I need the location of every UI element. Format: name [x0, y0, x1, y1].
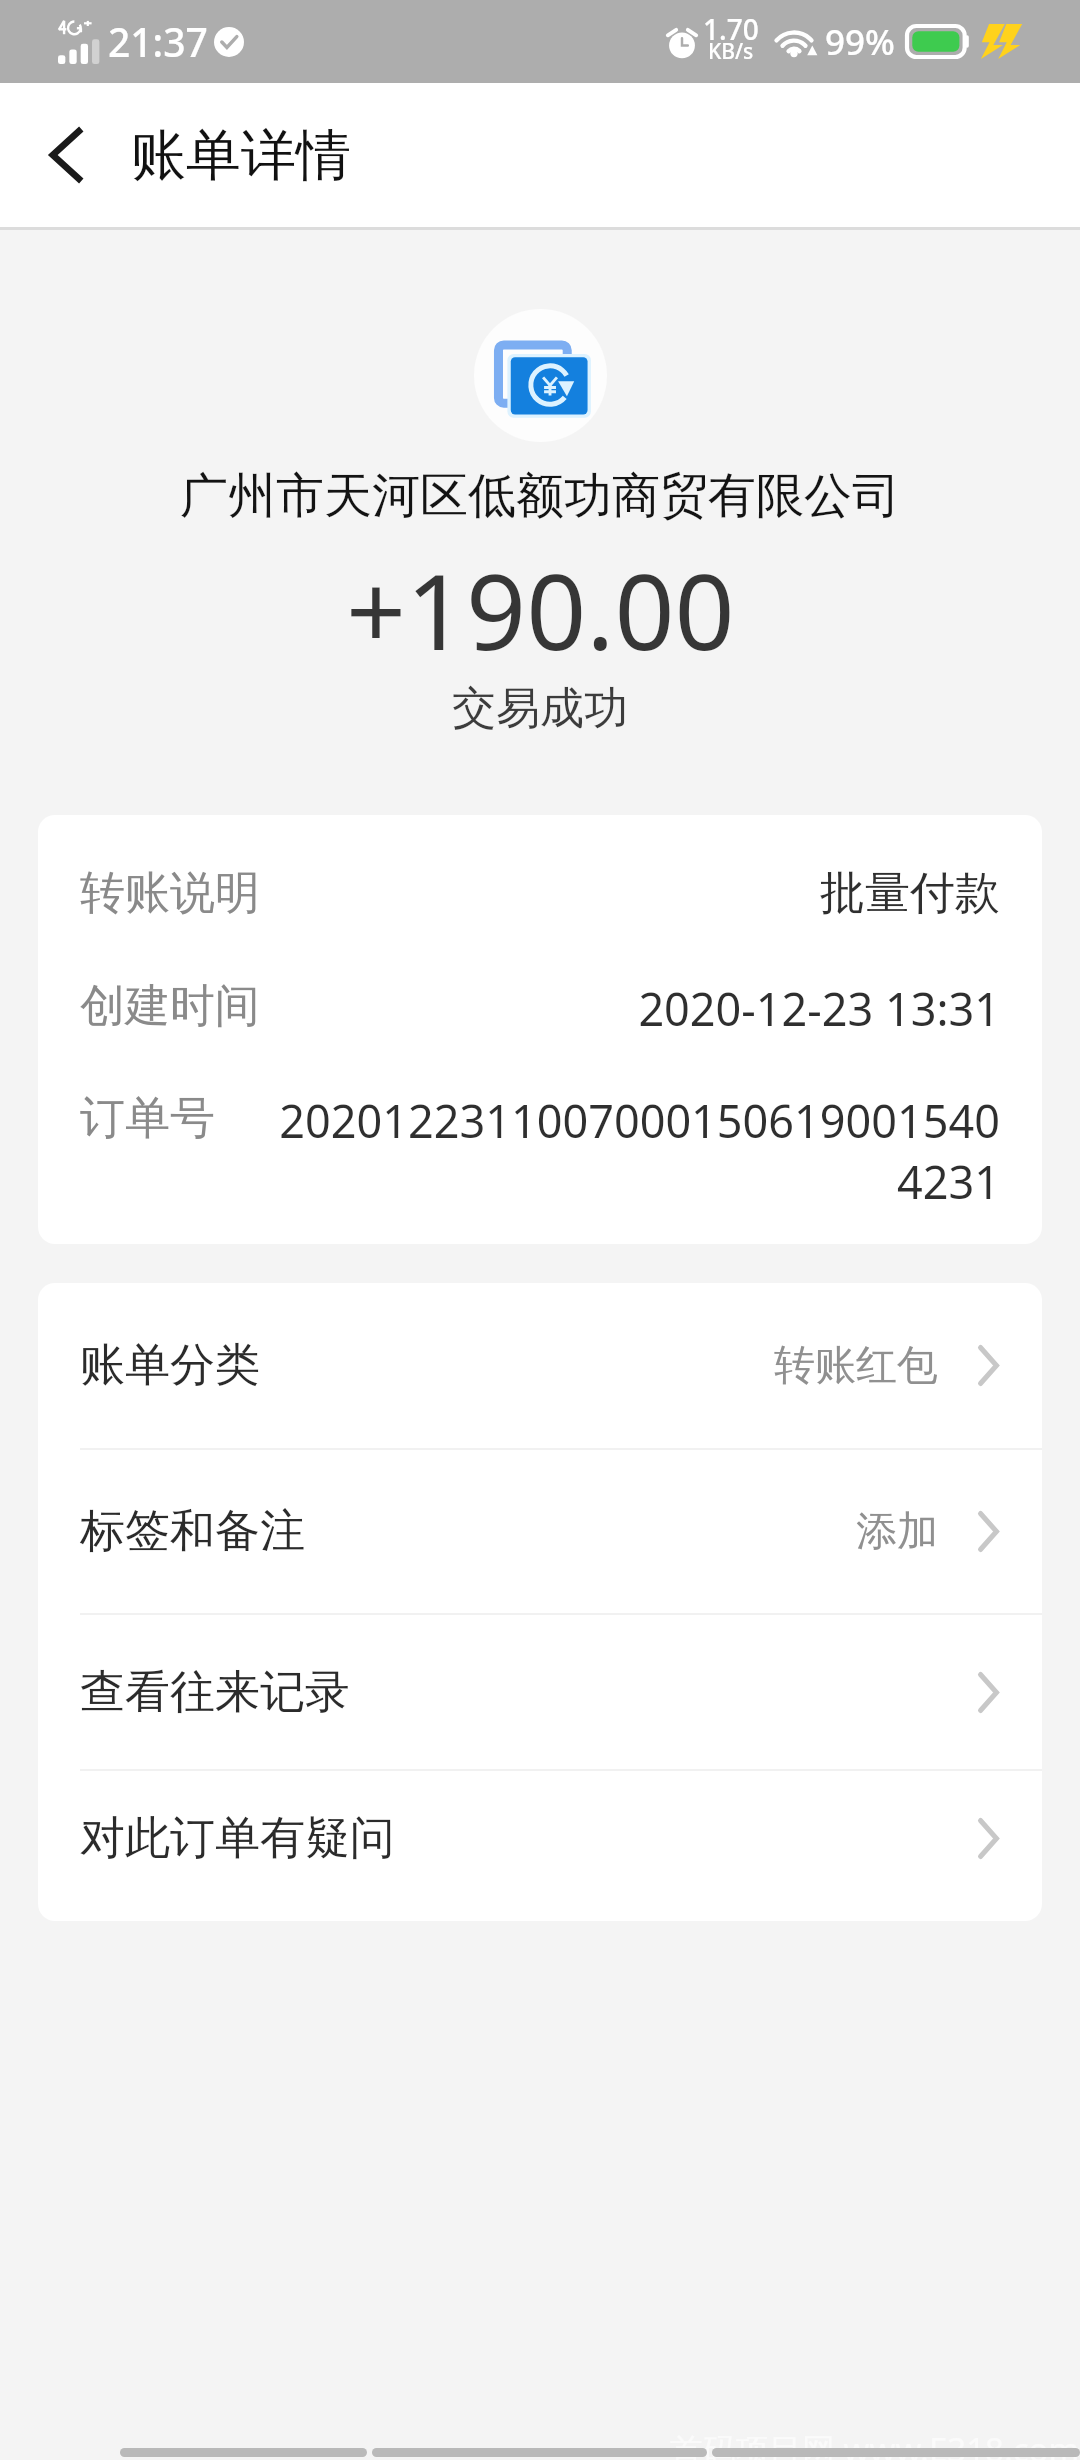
staticText: 广州市天河区低额功商贸有限公司	[180, 466, 900, 526]
staticText: 20201223110070001506190015404231	[277, 1090, 1000, 1212]
button[interactable]: 账单分类	[38, 1283, 1042, 1448]
staticText: 查看往来记录	[80, 1664, 350, 1721]
staticText: 转账红包	[774, 1340, 938, 1392]
staticText: 添加	[856, 1506, 938, 1558]
staticText: KB/s	[708, 37, 754, 66]
staticText: 账单详情	[131, 121, 351, 190]
button[interactable]: 标签和备注	[38, 1450, 1042, 1613]
staticText: 创建时间	[80, 978, 260, 1035]
button[interactable]: 对此订单有疑问	[38, 1771, 1042, 1921]
staticText: 21:37	[108, 15, 208, 68]
button[interactable]: Back	[20, 108, 114, 202]
staticText: 2020-12-23 13:31	[322, 978, 1000, 1039]
staticText: 1.70	[703, 10, 759, 48]
staticText: 首码项目网 www.E318.com	[670, 2427, 1080, 2460]
staticText: +190.00	[346, 538, 735, 681]
staticText: 批量付款	[322, 865, 1000, 922]
staticText: 账单分类	[80, 1337, 260, 1394]
staticText: 交易成功	[452, 681, 628, 736]
staticText: 99%	[825, 18, 895, 66]
button[interactable]: 查看往来记录	[38, 1615, 1042, 1769]
staticText: 标签和备注	[80, 1503, 305, 1560]
staticText: 对此订单有疑问	[80, 1810, 395, 1867]
staticText: 转账说明	[80, 865, 260, 922]
staticText: 订单号	[80, 1090, 215, 1147]
